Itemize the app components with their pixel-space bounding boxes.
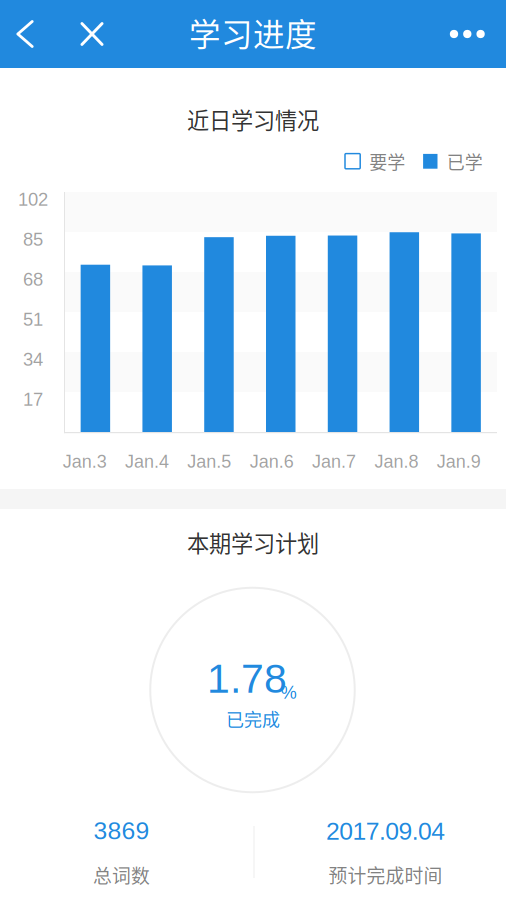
staticText: % [281, 682, 297, 702]
staticText: Jan.5 [187, 451, 231, 471]
staticText: Jan.6 [250, 451, 294, 471]
staticText: 本期学习计划 [187, 526, 319, 558]
staticText: 学习进度 [189, 10, 317, 55]
staticText: 近日学习情况 [187, 103, 319, 135]
staticText: 要学 [369, 148, 405, 174]
staticText: Jan.3 [63, 451, 107, 471]
staticText: 17 [23, 389, 43, 410]
staticText: Jan.9 [437, 451, 481, 471]
staticText: Jan.4 [125, 451, 169, 471]
staticText: 102 [18, 189, 48, 210]
staticText: Jan.7 [312, 451, 356, 471]
button[interactable]: 返回 [0, 0, 50, 68]
staticText: 总词数 [93, 861, 150, 889]
staticText: 51 [23, 309, 43, 330]
staticText: 2017.09.04 [326, 817, 445, 845]
staticText: 3869 [93, 817, 149, 844]
staticText: 85 [23, 229, 43, 250]
staticText: 已完成 [226, 706, 280, 732]
staticText: 34 [23, 349, 43, 370]
staticText: 预计完成时间 [328, 861, 442, 888]
staticText: 68 [23, 269, 43, 290]
staticText: 已学 [447, 148, 483, 174]
button[interactable]: 更多 [439, 0, 495, 68]
button[interactable]: 关闭 [67, 0, 117, 68]
staticText: 1.78 [207, 656, 287, 701]
staticText: Jan.8 [374, 451, 418, 471]
